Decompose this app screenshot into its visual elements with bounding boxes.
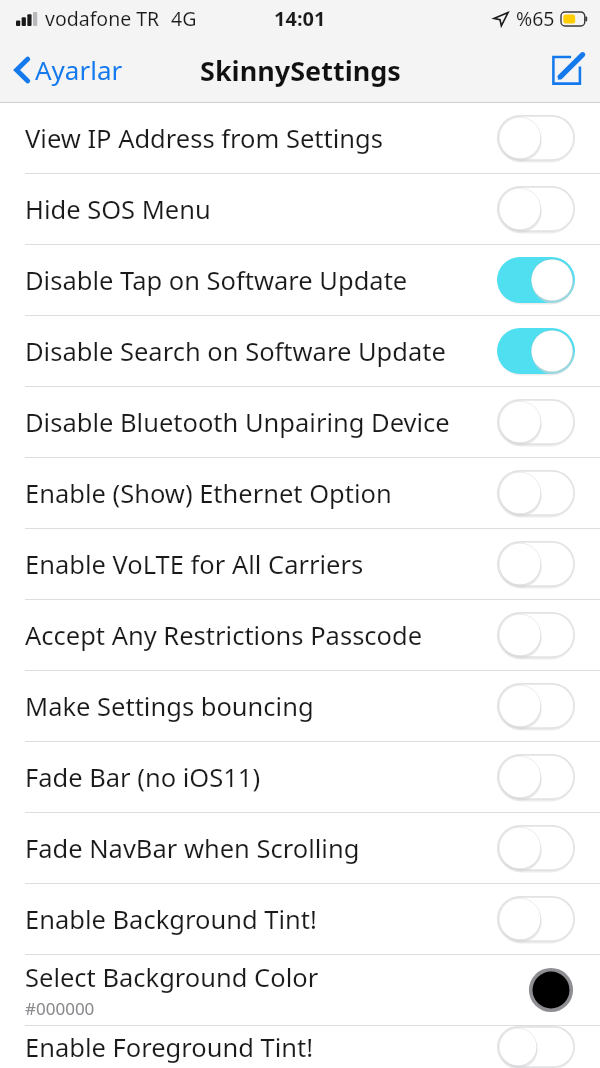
button[interactable]: Compose [538,45,600,95]
staticText: Fade Bar (no iOS11) [25,760,261,795]
button[interactable]: Ayarlar [0,46,133,93]
staticText: Enable Background Tint! [25,902,317,937]
button[interactable]: Enable (Show) Ethernet Option [0,458,600,528]
button[interactable]: Disable Tap on Software Update [0,245,600,315]
button[interactable]: Enable Foreground Tint! [0,1026,600,1068]
button[interactable]: View IP Address from Settings [0,103,600,173]
staticText: Hide SOS Menu [25,192,211,227]
button[interactable]: Enable VoLTE for All Carriers [0,529,600,599]
button[interactable]: Disable Bluetooth Unpairing Device [0,387,600,457]
button[interactable]: Hide SOS Menu [0,174,600,244]
staticText: Ayarlar [35,52,123,87]
button[interactable]: Select Background Color [0,955,600,1025]
staticText: Accept Any Restrictions Passcode [25,618,423,653]
staticText: %65 [516,5,555,32]
button[interactable]: Fade Bar (no iOS11) [0,742,600,812]
button[interactable]: Make Settings bouncing [0,671,600,741]
button[interactable]: Fade NavBar when Scrolling [0,813,600,883]
staticText: Disable Tap on Software Update [25,263,408,298]
staticText: Enable VoLTE for All Carriers [25,547,364,582]
staticText: SkinnySettings [200,52,401,89]
staticText: View IP Address from Settings [25,121,383,156]
staticText: Make Settings bouncing [25,689,314,724]
staticText: 14:01 [274,5,326,32]
button[interactable]: Disable Search on Software Update [0,316,600,386]
button[interactable]: Accept Any Restrictions Passcode [0,600,600,670]
staticText: Disable Bluetooth Unpairing Device [25,405,450,440]
staticText: Disable Search on Software Update [25,334,446,369]
staticText: Select Background Color [25,960,319,995]
staticText: #000000 [25,997,95,1020]
staticText: Enable Foreground Tint! [25,1030,314,1065]
button[interactable]: Enable Background Tint! [0,884,600,954]
staticText: vodafone TR [45,5,160,32]
staticText: Enable (Show) Ethernet Option [25,476,392,511]
staticText: 4G [171,5,197,32]
staticText: Fade NavBar when Scrolling [25,831,360,866]
